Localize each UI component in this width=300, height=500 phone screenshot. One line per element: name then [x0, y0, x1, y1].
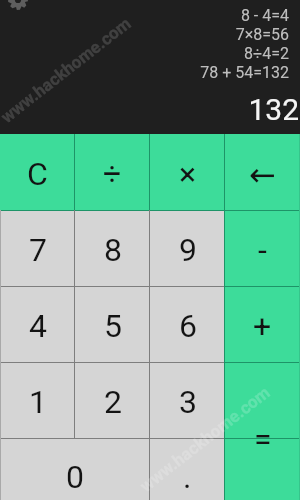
staticText: 7 — [29, 231, 47, 269]
button[interactable]: 7 — [0, 210, 75, 286]
staticText: - — [258, 231, 267, 269]
staticText: 8÷4=2 — [244, 44, 289, 63]
button[interactable]: 9 — [150, 210, 225, 286]
staticText: 3 — [179, 383, 197, 421]
button[interactable]: 1 — [0, 362, 75, 438]
staticText: C — [27, 155, 48, 193]
button[interactable]: - — [225, 210, 300, 286]
staticText: 8 — [104, 231, 122, 269]
staticText: × — [179, 155, 197, 193]
staticText: 4 — [29, 307, 47, 345]
staticText: 9 — [179, 231, 197, 269]
button[interactable]: . — [150, 458, 225, 496]
staticText: ÷ — [103, 155, 122, 193]
button[interactable]: Backspace — [225, 134, 300, 210]
staticText: 7×8=56 — [235, 25, 289, 44]
button[interactable]: C — [0, 134, 75, 210]
button[interactable]: ÷ — [75, 134, 150, 210]
staticText: 132 — [248, 92, 299, 127]
staticText: ← — [249, 156, 276, 193]
staticText: 1 — [29, 383, 47, 421]
button[interactable]: = — [225, 362, 300, 500]
staticText: . — [183, 458, 192, 496]
staticText: 5 — [104, 307, 122, 345]
button[interactable]: Settings — [8, 0, 28, 10]
staticText: = — [254, 420, 272, 458]
staticText: 6 — [179, 307, 197, 345]
button[interactable]: 2 — [75, 362, 150, 438]
button[interactable]: 0 — [0, 458, 150, 496]
button[interactable]: × — [150, 134, 225, 210]
staticText: 78 + 54=132 — [200, 63, 289, 82]
button[interactable]: 8 — [75, 210, 150, 286]
staticText: 0 — [66, 458, 84, 496]
button[interactable]: 4 — [0, 286, 75, 362]
button[interactable]: 5 — [75, 286, 150, 362]
button[interactable]: 3 — [150, 362, 225, 438]
staticText: + — [253, 307, 272, 345]
button[interactable]: 6 — [150, 286, 225, 362]
staticText: 8 - 4=4 — [240, 6, 289, 25]
staticText: www.hackhome.com — [0, 13, 135, 127]
staticText: www.hackhome.com — [136, 382, 274, 496]
button[interactable]: + — [225, 286, 300, 362]
staticText: 2 — [104, 383, 122, 421]
